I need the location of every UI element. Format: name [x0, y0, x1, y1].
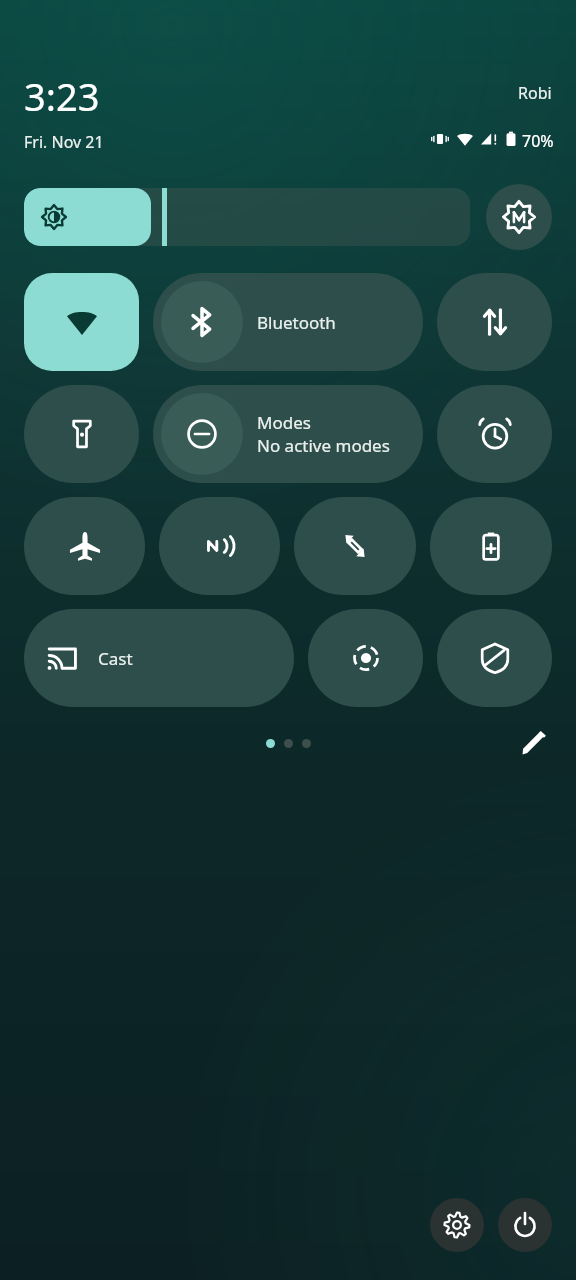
staticText: 3:23: [24, 70, 100, 122]
button[interactable]: Power: [498, 1198, 552, 1252]
button[interactable]: Bluetooth: [153, 273, 423, 371]
button[interactable]: Cast: [24, 609, 294, 707]
button[interactable]: Edit tiles: [514, 723, 554, 763]
staticText: Bluetooth: [257, 311, 336, 334]
button[interactable]: Wi-Fi: [24, 273, 139, 371]
button[interactable]: Alarm: [437, 385, 552, 483]
staticText: 70%: [522, 130, 554, 148]
staticText: No active modes: [257, 434, 390, 457]
staticText: Modes: [257, 411, 311, 434]
button[interactable]: [24, 188, 470, 246]
button[interactable]: NFC: [159, 497, 280, 595]
button[interactable]: Airplane mode: [24, 497, 145, 595]
staticText: Cast: [98, 647, 133, 670]
button[interactable]: Settings: [430, 1198, 484, 1252]
button[interactable]: Safety: [437, 609, 552, 707]
staticText: Robi: [518, 82, 552, 104]
button[interactable]: Auto rotate: [294, 497, 416, 595]
button[interactable]: Battery saver: [430, 497, 552, 595]
button[interactable]: Modes: [153, 385, 423, 483]
button[interactable]: Location: [308, 609, 423, 707]
staticText: Fri, Nov 21: [24, 131, 104, 148]
button[interactable]: Flashlight: [24, 385, 139, 483]
button[interactable]: Mobile data: [437, 273, 552, 371]
button[interactable]: Auto brightness: [486, 184, 552, 250]
